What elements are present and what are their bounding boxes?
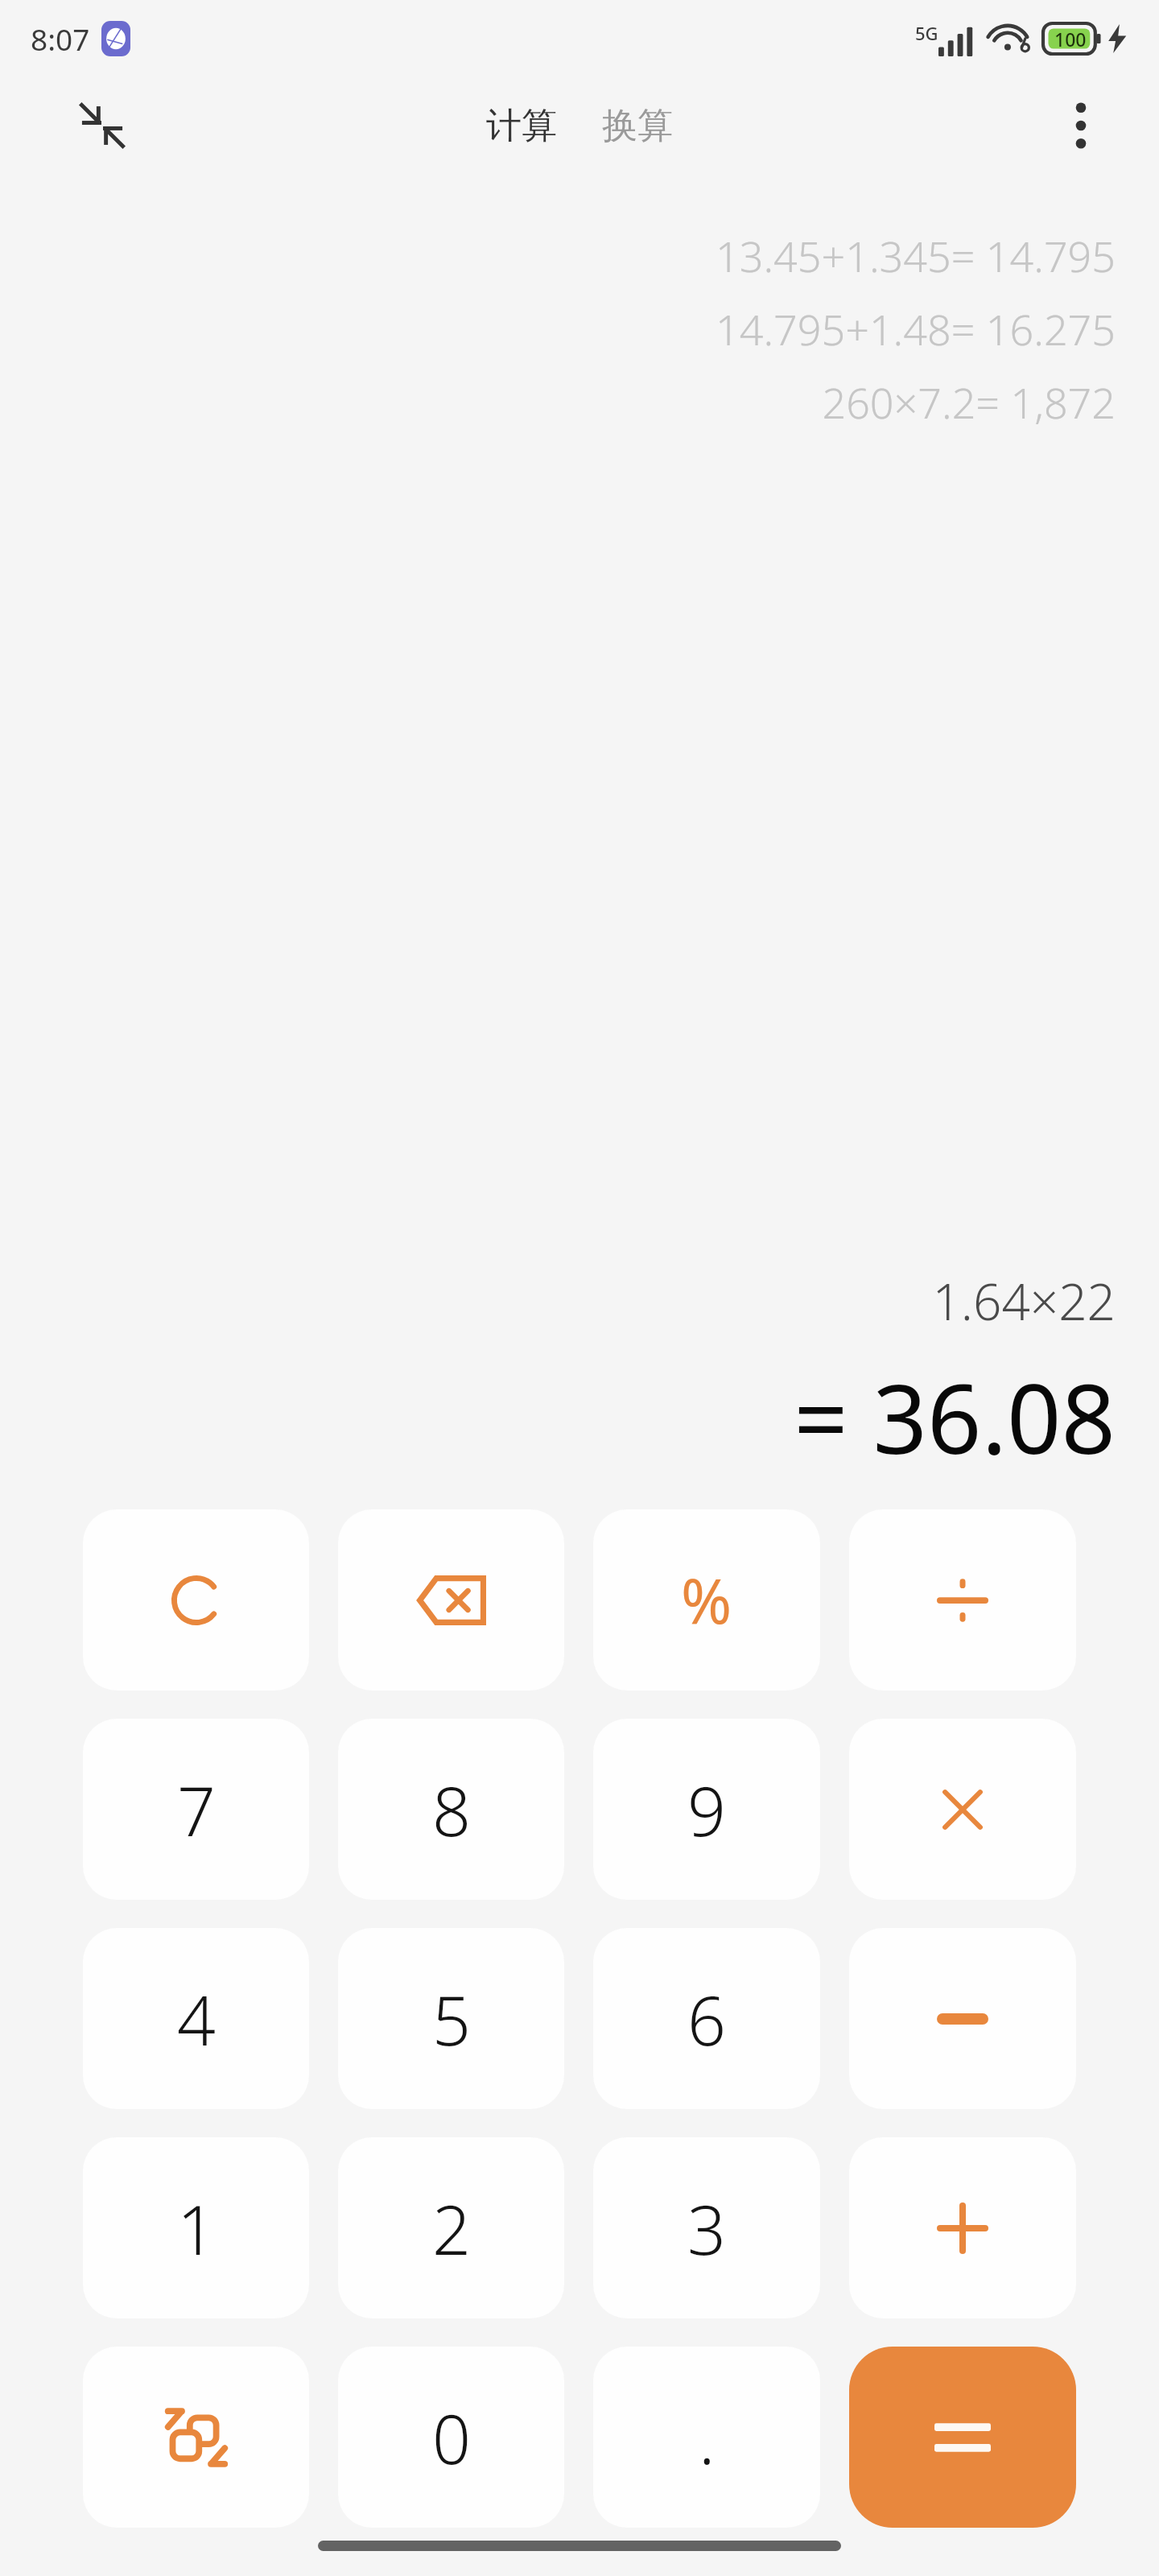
staticText: 1.64×22 bbox=[932, 1267, 1116, 1335]
button[interactable]: 8 bbox=[338, 1719, 564, 1900]
staticText: 2 bbox=[432, 2182, 471, 2274]
staticText: . bbox=[699, 2392, 716, 2483]
button[interactable]: Minus bbox=[849, 1928, 1076, 2109]
staticText: 260×7.2= 1,872 bbox=[822, 374, 1116, 431]
button[interactable]: Equals bbox=[849, 2347, 1076, 2528]
staticText: 6 bbox=[687, 1973, 726, 2065]
button[interactable]: Backspace bbox=[338, 1509, 564, 1690]
button[interactable]: Divide bbox=[849, 1509, 1076, 1690]
staticText: 换算 bbox=[602, 104, 673, 148]
button[interactable]: 9 bbox=[593, 1719, 820, 1900]
staticText: 7 bbox=[177, 1764, 216, 1856]
staticText: 5 bbox=[432, 1973, 471, 2065]
button[interactable]: 3 bbox=[593, 2137, 820, 2318]
staticText: 1 bbox=[177, 2182, 216, 2274]
button[interactable]: . bbox=[593, 2347, 820, 2528]
button[interactable]: 1 bbox=[83, 2137, 309, 2318]
button[interactable]: Percent bbox=[593, 1509, 820, 1690]
staticText: % bbox=[681, 1558, 732, 1642]
button[interactable]: 7 bbox=[83, 1719, 309, 1900]
button[interactable]: Clear bbox=[83, 1509, 309, 1690]
button[interactable]: Multiply bbox=[849, 1719, 1076, 1900]
staticText: 14.795+1.48= 16.275 bbox=[716, 300, 1116, 357]
button[interactable]: 6 bbox=[593, 1928, 820, 2109]
button[interactable]: 0 bbox=[338, 2347, 564, 2528]
staticText: = 36.08 bbox=[794, 1352, 1116, 1482]
button[interactable]: 计算 bbox=[476, 96, 567, 156]
staticText: 计算 bbox=[486, 104, 557, 148]
button[interactable]: Plus bbox=[849, 2137, 1076, 2318]
staticText: 0 bbox=[432, 2392, 471, 2483]
staticText: 9 bbox=[687, 1764, 726, 1856]
staticText: 8:07 bbox=[31, 19, 90, 59]
staticText: 8 bbox=[432, 1764, 471, 1856]
staticText: 13.45+1.345= 14.795 bbox=[716, 227, 1116, 284]
button[interactable]: 4 bbox=[83, 1928, 309, 2109]
button[interactable]: 换算 bbox=[592, 96, 683, 156]
button[interactable]: More options bbox=[1050, 94, 1112, 157]
staticText: 5G bbox=[915, 21, 938, 45]
staticText: 4 bbox=[177, 1973, 216, 2065]
button[interactable]: Collapse bbox=[71, 94, 134, 157]
button[interactable]: Scan to calculate bbox=[83, 2347, 309, 2528]
staticText: 100 bbox=[1054, 27, 1087, 52]
button[interactable]: 5 bbox=[338, 1928, 564, 2109]
button[interactable]: 2 bbox=[338, 2137, 564, 2318]
staticText: 3 bbox=[687, 2182, 726, 2274]
